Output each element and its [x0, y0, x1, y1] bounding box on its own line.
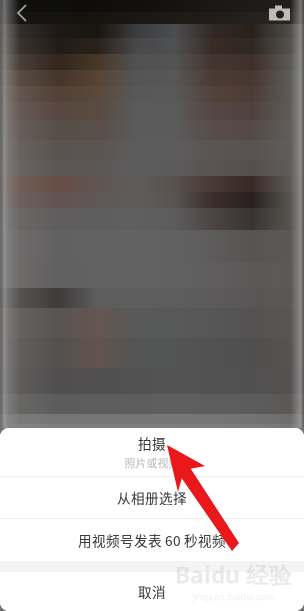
button[interactable]: Camera [258, 0, 304, 26]
staticText: 拍摄 [138, 433, 166, 453]
button[interactable]: 取消 [0, 572, 304, 611]
button[interactable]: 从相册选择 [0, 477, 304, 518]
staticText: jingyan.baidu.com [192, 590, 274, 603]
button[interactable]: 用视频号发表 60 秒视频 [0, 519, 304, 561]
staticText: 取消 [138, 582, 166, 601]
staticText: 用视频号发表 60 秒视频 [78, 530, 226, 550]
staticText: Baidu 经验 [175, 559, 292, 590]
button[interactable]: 拍摄 [0, 428, 304, 476]
staticText: 从相册选择 [117, 488, 187, 507]
staticText: 照片或视频 [124, 455, 179, 471]
button[interactable]: Back [0, 0, 46, 26]
